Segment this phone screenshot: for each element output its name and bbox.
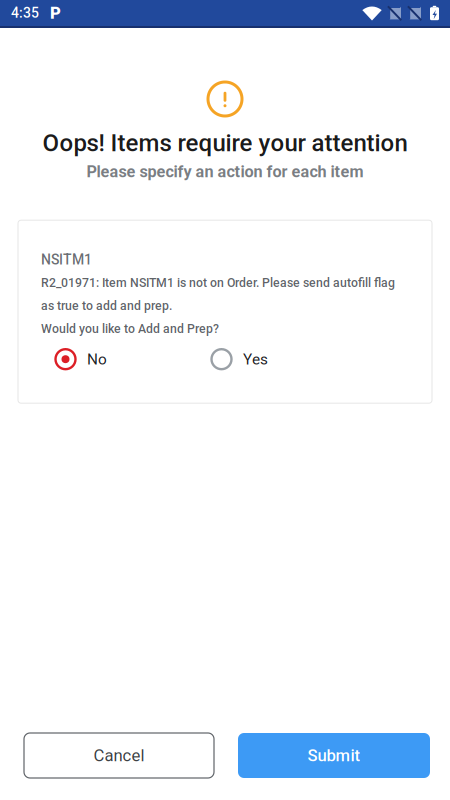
staticText: Would you like to Add and Prep? xyxy=(41,321,219,336)
staticText: Submit xyxy=(307,746,360,765)
staticText: as true to add and prep. xyxy=(41,298,172,313)
button[interactable]: No xyxy=(55,346,107,372)
staticText: Please specify an action for each item xyxy=(86,162,363,181)
staticText: P xyxy=(50,3,61,23)
staticText: NSITM1 xyxy=(41,251,92,268)
button[interactable]: Yes xyxy=(211,346,268,372)
staticText: Oops! Items require your attention xyxy=(42,129,407,157)
staticText: R2_01971: Item NSITM1 is not on Order. P… xyxy=(41,275,395,290)
button[interactable]: Submit xyxy=(238,733,430,778)
staticText: Yes xyxy=(243,350,268,368)
staticText: Cancel xyxy=(93,746,144,765)
staticText: 4:35 xyxy=(11,5,39,21)
button[interactable]: Cancel xyxy=(24,733,214,778)
staticText: No xyxy=(87,350,107,368)
